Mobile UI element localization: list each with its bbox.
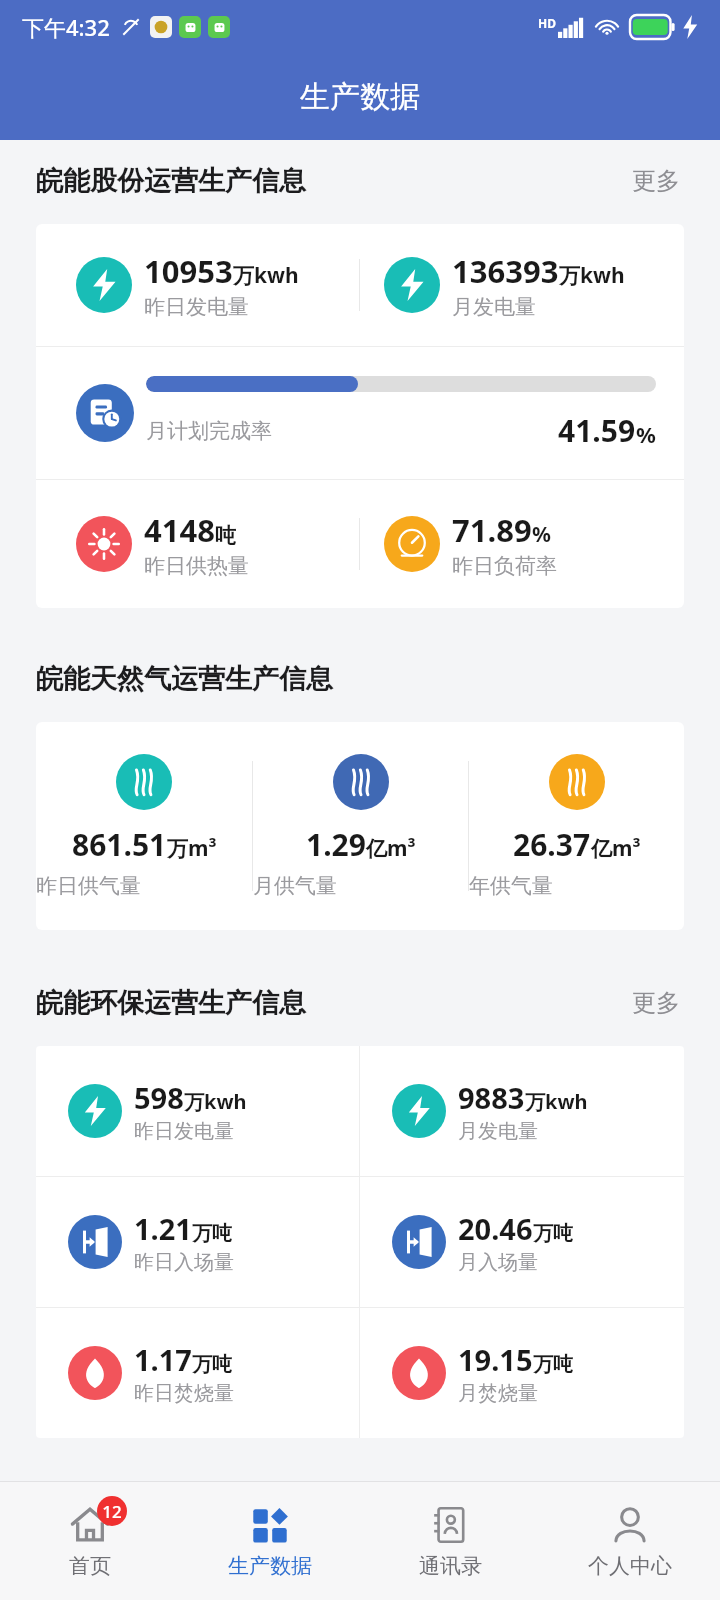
staticText: 41.59 bbox=[558, 410, 636, 451]
staticText: 861.51 bbox=[72, 824, 167, 865]
staticText: 26.37 bbox=[513, 824, 591, 865]
button[interactable]: 136393 bbox=[360, 224, 684, 346]
staticText: 月发电量 bbox=[452, 294, 536, 320]
button[interactable]: 598 bbox=[36, 1046, 359, 1176]
staticText: 下午4:32 bbox=[22, 12, 110, 42]
staticText: 首页 bbox=[69, 1553, 111, 1579]
staticText: 个人中心 bbox=[588, 1553, 672, 1579]
staticText: 万吨 bbox=[533, 1221, 573, 1246]
staticText: 10953 bbox=[144, 250, 233, 292]
staticText: 598 bbox=[134, 1078, 184, 1117]
staticText: 4148 bbox=[144, 509, 215, 551]
staticText: 月发电量 bbox=[458, 1119, 538, 1144]
staticText: HD bbox=[538, 15, 556, 31]
button[interactable]: 71.89 bbox=[360, 480, 684, 608]
staticText: 昨日入场量 bbox=[134, 1250, 234, 1275]
button[interactable]: 12 bbox=[0, 1482, 180, 1600]
staticText: % bbox=[532, 520, 551, 549]
button[interactable]: 通讯录 bbox=[360, 1482, 540, 1600]
button[interactable]: 26.37 bbox=[469, 722, 684, 930]
staticText: 1.29 bbox=[306, 824, 366, 865]
button[interactable]: 更多 bbox=[628, 984, 684, 1022]
staticText: 年供气量 bbox=[469, 873, 684, 899]
button[interactable]: 20.46 bbox=[360, 1177, 684, 1307]
staticText: 71.89 bbox=[452, 509, 532, 551]
staticText: 12 bbox=[102, 1500, 122, 1523]
button[interactable]: 生产数据 bbox=[180, 1482, 360, 1600]
staticText: 皖能天然气运营生产信息 bbox=[36, 662, 333, 696]
staticText: 昨日焚烧量 bbox=[134, 1381, 234, 1406]
button[interactable]: 19.15 bbox=[360, 1308, 684, 1438]
staticText: 更多 bbox=[632, 166, 680, 196]
staticText: 19.15 bbox=[458, 1340, 533, 1379]
staticText: % bbox=[636, 419, 656, 449]
staticText: 月计划完成率 bbox=[146, 418, 272, 444]
staticText: 昨日发电量 bbox=[134, 1119, 234, 1144]
button[interactable]: 1.29 bbox=[253, 722, 468, 930]
staticText: 月焚烧量 bbox=[458, 1381, 538, 1406]
button[interactable]: 4148 bbox=[36, 480, 359, 608]
staticText: 万kwh bbox=[184, 1088, 247, 1115]
staticText: 1.21 bbox=[134, 1209, 192, 1248]
button[interactable]: 861.51 bbox=[36, 722, 252, 930]
button[interactable]: 个人中心 bbox=[540, 1482, 720, 1600]
staticText: 更多 bbox=[632, 988, 680, 1018]
staticText: 皖能环保运营生产信息 bbox=[36, 986, 306, 1020]
staticText: 月供气量 bbox=[253, 873, 468, 899]
button[interactable]: 月计划完成率 bbox=[36, 347, 684, 479]
staticText: 万吨 bbox=[533, 1352, 573, 1377]
staticText: 生产数据 bbox=[228, 1553, 312, 1579]
staticText: 昨日供热量 bbox=[144, 553, 249, 579]
button[interactable]: 更多 bbox=[628, 162, 684, 200]
staticText: 通讯录 bbox=[419, 1553, 482, 1579]
button[interactable]: 9883 bbox=[360, 1046, 684, 1176]
staticText: 9883 bbox=[458, 1078, 525, 1117]
staticText: 20.46 bbox=[458, 1209, 533, 1248]
staticText: 万m³ bbox=[167, 834, 217, 863]
staticText: 昨日供气量 bbox=[36, 873, 252, 899]
staticText: 万吨 bbox=[192, 1221, 232, 1246]
button[interactable]: 1.17 bbox=[36, 1308, 359, 1438]
staticText: 生产数据 bbox=[300, 78, 420, 116]
staticText: 万吨 bbox=[192, 1352, 232, 1377]
button[interactable]: 10953 bbox=[36, 224, 359, 346]
staticText: 1.17 bbox=[134, 1340, 192, 1379]
staticText: 万kwh bbox=[559, 261, 625, 290]
staticText: 吨 bbox=[215, 523, 236, 549]
staticText: 万kwh bbox=[525, 1088, 588, 1115]
staticText: 昨日负荷率 bbox=[452, 553, 557, 579]
staticText: 136393 bbox=[452, 250, 559, 292]
staticText: 亿m³ bbox=[591, 834, 641, 863]
staticText: 月入场量 bbox=[458, 1250, 538, 1275]
staticText: 亿m³ bbox=[366, 834, 416, 863]
staticText: 昨日发电量 bbox=[144, 294, 249, 320]
button[interactable]: 1.21 bbox=[36, 1177, 359, 1307]
staticText: 万kwh bbox=[233, 261, 299, 290]
staticText: 皖能股份运营生产信息 bbox=[36, 164, 306, 198]
